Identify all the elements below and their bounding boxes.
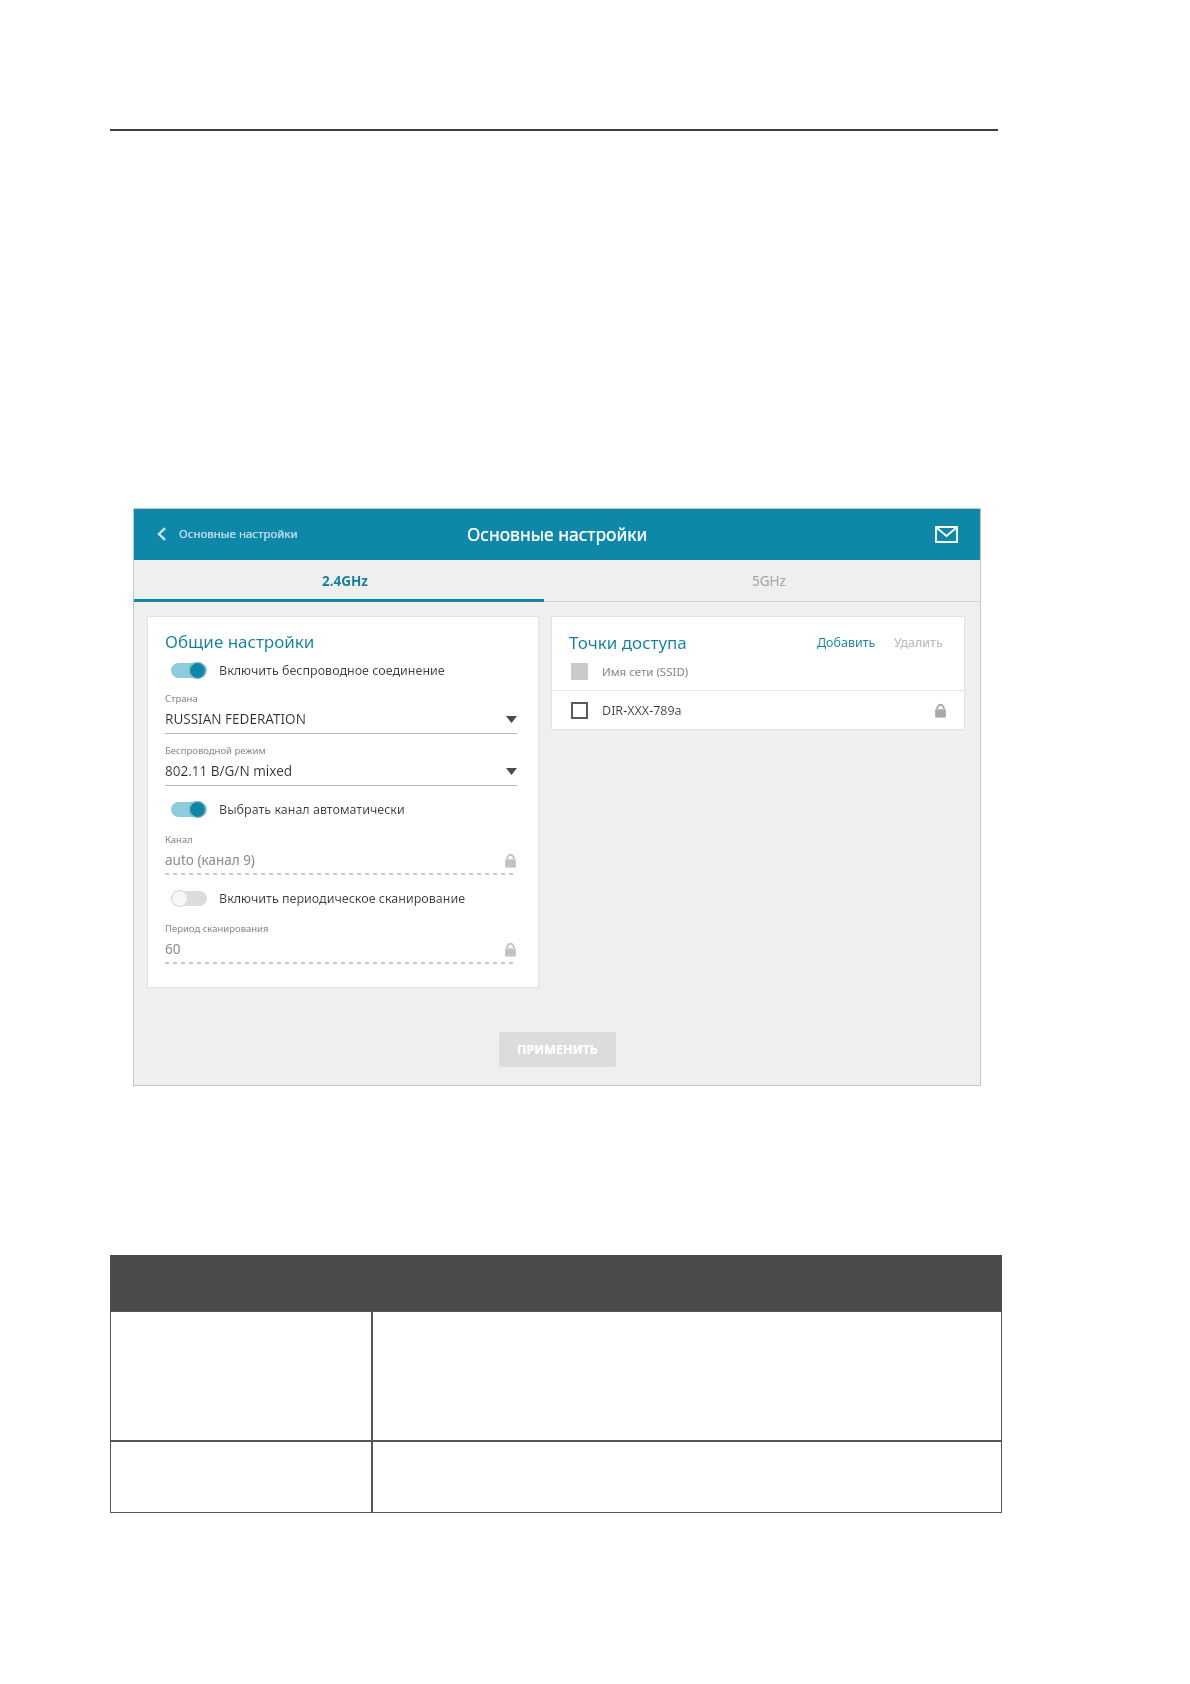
button[interactable]: Беспроводной режим: [165, 734, 517, 786]
button[interactable]: Страна: [165, 682, 517, 734]
staticText: Точки доступа: [569, 631, 687, 654]
button[interactable]: 2.4GHz: [133, 560, 557, 602]
staticText: Имя сети (SSID): [602, 664, 689, 680]
button[interactable]: Messages: [931, 519, 961, 549]
staticText: RUSSIAN FEDERATION: [165, 710, 306, 728]
staticText: DIR-XXX-789a: [602, 702, 682, 719]
staticText: Общие настройки: [165, 630, 315, 653]
staticText: Выбрать канал автоматически: [219, 801, 405, 818]
other: Secured: [934, 703, 947, 718]
other: Back: [155, 527, 169, 541]
staticText: Включить периодическое сканирование: [219, 890, 466, 907]
button[interactable]: Добавить: [813, 630, 880, 655]
button[interactable]: 5GHz: [557, 560, 981, 602]
staticText: Основные настройки: [179, 526, 298, 542]
staticText: Удалить: [894, 634, 943, 651]
staticText: 2.4GHz: [322, 572, 368, 590]
staticText: ПРИМЕНИТЬ: [517, 1041, 598, 1058]
staticText: Страна: [165, 692, 198, 705]
button[interactable]: Удалить: [890, 630, 947, 655]
staticText: 60: [165, 940, 181, 958]
button[interactable]: Back: [151, 522, 302, 546]
button[interactable]: Включить периодическое сканирование: [165, 887, 517, 910]
staticText: Канал: [165, 833, 193, 846]
staticText: 802.11 B/G/N mixed: [165, 762, 293, 780]
staticText: Добавить: [817, 634, 876, 651]
staticText: Беспроводной режим: [165, 744, 266, 757]
button[interactable]: ПРИМЕНИТЬ: [499, 1032, 616, 1067]
staticText: 5GHz: [752, 572, 786, 590]
button[interactable]: Включить беспроводное соединение: [165, 659, 517, 682]
staticText: auto (канал 9): [165, 851, 255, 869]
staticText: Включить беспроводное соединение: [219, 662, 445, 679]
button[interactable]: Выбрать канал автоматически: [165, 798, 517, 821]
button[interactable]: DIR-XXX-789a: [551, 691, 965, 730]
staticText: Период сканирования: [165, 922, 269, 935]
staticText: Основные настройки: [467, 522, 648, 546]
